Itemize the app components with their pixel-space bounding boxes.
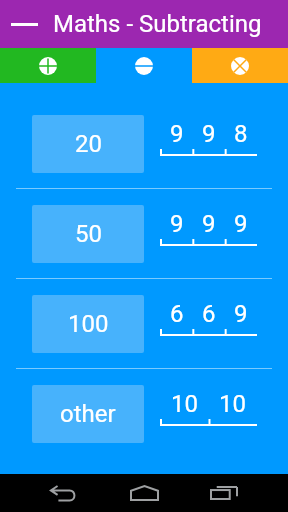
staticText: 9 (170, 210, 184, 238)
button[interactable]: 100 (0, 279, 288, 368)
staticText: 6 (170, 300, 184, 328)
staticText: 10 (219, 390, 246, 418)
staticText: Maths - Subtracting (53, 10, 262, 38)
staticText: 8 (234, 120, 248, 148)
staticText: 6 (202, 300, 216, 328)
staticText: 9 (202, 120, 216, 148)
button[interactable]: Back (40, 474, 88, 512)
staticText: 9 (234, 300, 248, 328)
staticText: 9 (234, 210, 248, 238)
staticText: 9 (202, 210, 216, 238)
button[interactable]: Home (120, 474, 168, 512)
button[interactable]: Recents (200, 474, 248, 512)
staticText: 20 (75, 130, 102, 158)
button[interactable]: 50 (0, 189, 288, 278)
staticText: 10 (171, 390, 198, 418)
button[interactable]: other (0, 369, 288, 458)
staticText: other (60, 400, 116, 428)
button[interactable]: Subtraction (96, 48, 192, 83)
button[interactable]: 20 (0, 99, 288, 188)
button[interactable]: Multiplication (192, 48, 288, 83)
staticText: 50 (75, 220, 102, 248)
staticText: 9 (170, 120, 184, 148)
button[interactable]: Menu (0, 0, 48, 48)
staticText: 100 (68, 310, 109, 338)
button[interactable]: Addition (0, 48, 96, 83)
